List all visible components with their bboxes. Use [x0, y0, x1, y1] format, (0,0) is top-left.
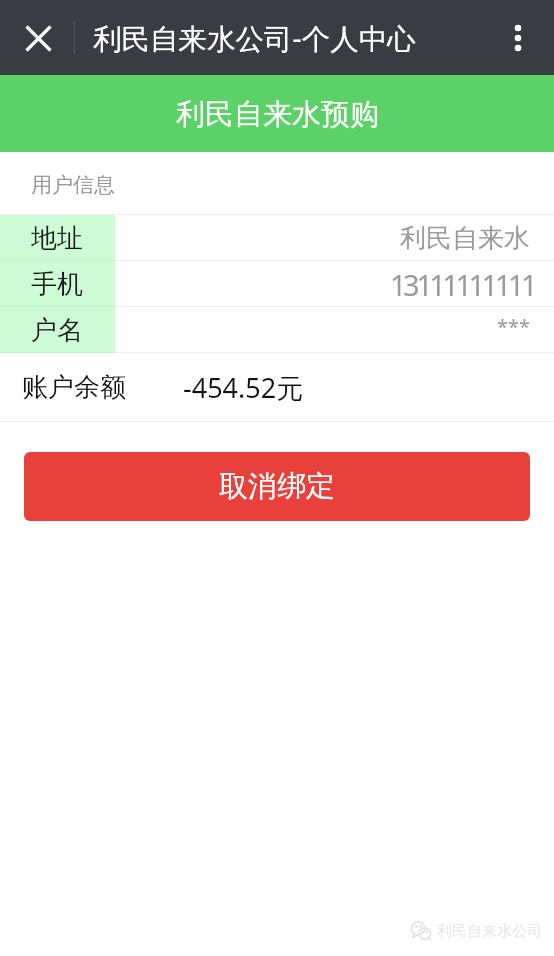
staticText: 利民自来水公司-个人中心 [93, 19, 416, 58]
staticText: 利民自来水 [400, 222, 530, 255]
staticText: 13111111111 [390, 265, 534, 304]
staticText: 户名 [31, 314, 83, 347]
staticText: 账户余额 [22, 371, 126, 404]
button[interactable]: 户名 [0, 307, 554, 353]
staticText: 取消绑定 [219, 468, 335, 505]
button[interactable]: Close [14, 14, 62, 62]
staticText: 利民自来水预购 [176, 96, 379, 133]
staticText: 地址 [31, 222, 83, 255]
staticText: 用户信息 [31, 172, 115, 198]
button[interactable]: More options [494, 14, 542, 62]
button[interactable]: 取消绑定 [24, 452, 530, 521]
button[interactable]: 地址 [0, 215, 554, 261]
staticText: *** [497, 313, 531, 340]
staticText: 手机 [31, 268, 83, 301]
staticText: -454.52元 [183, 369, 304, 406]
button[interactable]: 利民自来水公司 official account [411, 920, 542, 942]
staticText: 利民自来水公司 [437, 922, 542, 941]
button[interactable]: 手机 [0, 261, 554, 307]
